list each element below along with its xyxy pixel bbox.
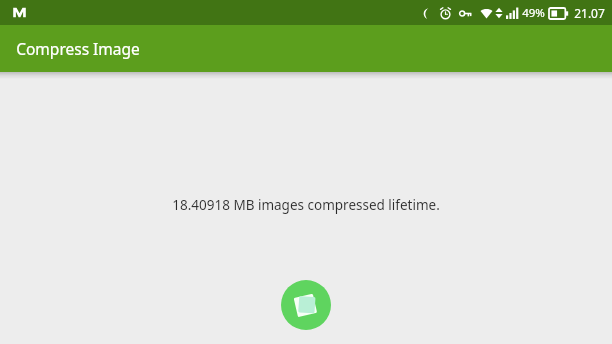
staticText: 18.40918 MB images compressed lifetime. (172, 196, 440, 214)
staticText: 21.07 (574, 5, 605, 21)
staticText: 49% (522, 5, 545, 21)
button[interactable]: Compress image (281, 280, 331, 330)
staticText: Compress Image (16, 38, 140, 59)
